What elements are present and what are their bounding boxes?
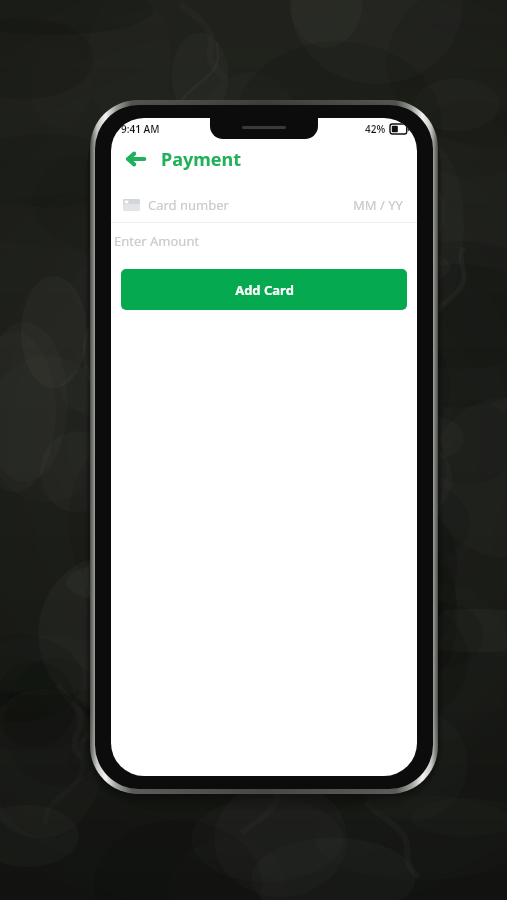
button[interactable]: Add Card (121, 269, 407, 310)
button[interactable]: Back (121, 144, 151, 174)
staticText: 42% (365, 122, 386, 136)
staticText: Payment (161, 147, 242, 172)
staticText: Add Card (235, 281, 294, 299)
button[interactable]: Enter Amount (111, 223, 417, 259)
staticText: MM / YY (353, 196, 403, 214)
staticText: 9:41 AM (121, 122, 160, 136)
button[interactable]: Card number (111, 188, 417, 222)
staticText: Enter Amount (114, 232, 200, 250)
staticText: Card number (148, 196, 229, 214)
